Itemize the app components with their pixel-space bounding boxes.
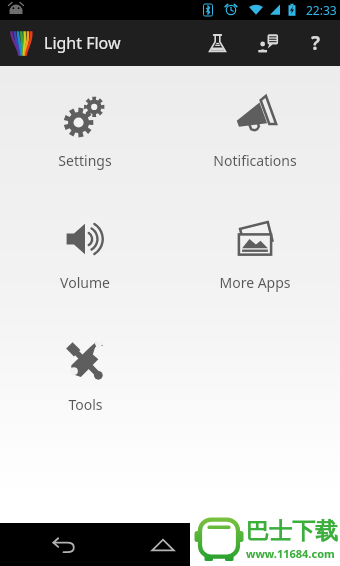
- button[interactable]: Settings: [0, 90, 170, 174]
- staticText: Notifications: [213, 151, 297, 170]
- button[interactable]: More Apps: [170, 212, 340, 296]
- staticText: ?: [311, 30, 321, 56]
- button[interactable]: Tools: [0, 334, 170, 418]
- button[interactable]: Feedback: [242, 20, 292, 66]
- staticText: Light Flow: [44, 32, 121, 54]
- button[interactable]: Notifications: [170, 90, 340, 174]
- staticText: Settings: [58, 151, 112, 170]
- button[interactable]: Volume: [0, 212, 170, 296]
- staticText: Tools: [68, 395, 103, 414]
- staticText: www.11684.com: [246, 546, 335, 561]
- staticText: 22:33: [306, 2, 337, 18]
- button[interactable]: Help: [292, 20, 340, 66]
- staticText: Volume: [60, 273, 110, 292]
- staticText: More Apps: [219, 273, 291, 292]
- staticText: 巴士下载: [246, 517, 338, 546]
- button[interactable]: Test notifications: [192, 20, 242, 66]
- button[interactable]: Home: [144, 526, 182, 564]
- button[interactable]: Back: [44, 526, 82, 564]
